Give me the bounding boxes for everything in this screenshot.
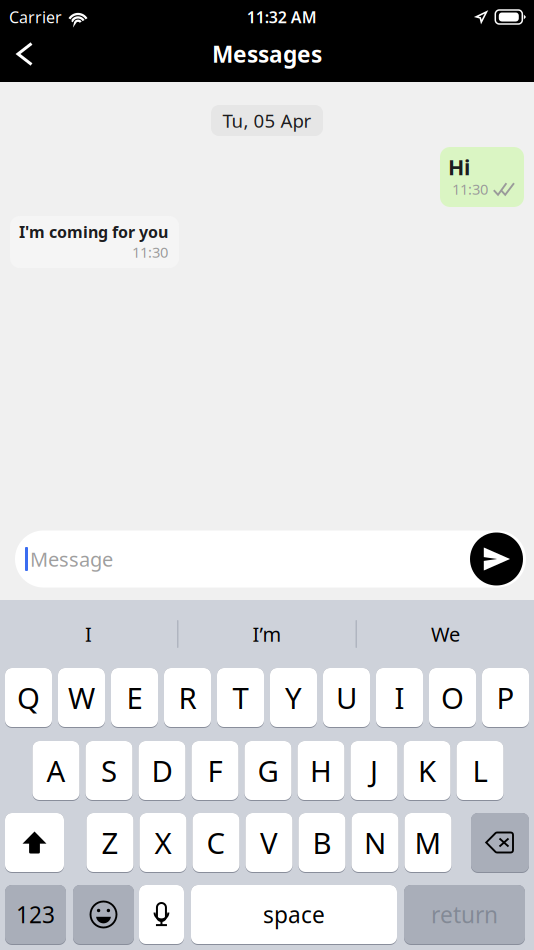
button[interactable]: Y: [270, 668, 317, 727]
staticText: Carrier: [9, 6, 62, 28]
button[interactable]: space: [191, 885, 397, 944]
staticText: I'm coming for you: [19, 221, 168, 242]
staticText: J: [370, 751, 378, 790]
staticText: S: [101, 751, 117, 790]
staticText: D: [151, 751, 172, 790]
button[interactable]: R: [164, 668, 211, 727]
staticText: G: [257, 751, 278, 790]
staticText: L: [472, 751, 487, 790]
button[interactable]: Shift: [5, 813, 64, 872]
button[interactable]: X: [139, 813, 186, 872]
staticText: I: [394, 678, 404, 717]
staticText: B: [312, 823, 331, 862]
staticText: Hi: [448, 153, 470, 181]
button[interactable]: I: [0, 600, 177, 668]
staticText: Message: [30, 546, 113, 572]
button[interactable]: Send: [470, 532, 523, 585]
staticText: Q: [17, 678, 40, 717]
button[interactable]: We: [357, 600, 534, 668]
button[interactable]: Dictate: [139, 885, 184, 944]
button[interactable]: M: [404, 813, 451, 872]
button[interactable]: G: [244, 741, 291, 800]
button[interactable]: E: [111, 668, 158, 727]
button[interactable]: Emoji: [73, 885, 134, 944]
staticText: 11:30: [132, 242, 168, 262]
staticText: N: [364, 823, 386, 862]
button[interactable]: U: [323, 668, 370, 727]
button[interactable]: return: [404, 885, 525, 944]
staticText: M: [414, 823, 441, 862]
button[interactable]: Back: [2, 30, 48, 78]
staticText: 11:32 AM: [247, 6, 317, 28]
button[interactable]: V: [245, 813, 292, 872]
staticText: U: [336, 678, 357, 717]
staticText: 11:30: [452, 179, 488, 199]
staticText: space: [263, 899, 325, 929]
button[interactable]: T: [217, 668, 264, 727]
staticText: Z: [101, 823, 118, 862]
staticText: return: [431, 899, 498, 929]
button[interactable]: I: [376, 668, 423, 727]
button[interactable]: I’m: [178, 600, 355, 668]
staticText: Y: [285, 678, 302, 717]
staticText: H: [310, 751, 332, 790]
staticText: E: [126, 678, 142, 717]
button[interactable]: Delete: [471, 813, 529, 872]
button[interactable]: N: [351, 813, 398, 872]
staticText: I: [85, 621, 92, 647]
button[interactable]: D: [138, 741, 185, 800]
button[interactable]: A: [32, 741, 79, 800]
staticText: R: [178, 678, 196, 717]
button[interactable]: W: [58, 668, 105, 727]
staticText: V: [260, 823, 278, 862]
staticText: X: [154, 823, 171, 862]
staticText: K: [418, 751, 436, 790]
button[interactable]: Q: [5, 668, 52, 727]
staticText: W: [68, 678, 95, 717]
button[interactable]: P: [482, 668, 529, 727]
staticText: P: [496, 678, 514, 717]
button[interactable]: S: [85, 741, 132, 800]
button[interactable]: K: [403, 741, 450, 800]
staticText: 123: [16, 899, 55, 929]
button[interactable]: L: [456, 741, 503, 800]
button[interactable]: O: [429, 668, 476, 727]
staticText: Messages: [212, 39, 322, 69]
staticText: I’m: [252, 621, 281, 647]
button[interactable]: B: [298, 813, 345, 872]
button[interactable]: F: [191, 741, 238, 800]
staticText: We: [431, 621, 460, 647]
staticText: O: [441, 678, 464, 717]
staticText: T: [232, 678, 248, 717]
staticText: F: [207, 751, 222, 790]
button[interactable]: C: [192, 813, 239, 872]
button[interactable]: J: [350, 741, 397, 800]
button[interactable]: Z: [86, 813, 133, 872]
button[interactable]: 123: [5, 885, 66, 944]
staticText: Tu, 05 Apr: [222, 108, 311, 133]
staticText: A: [46, 751, 65, 790]
staticText: C: [206, 823, 225, 862]
button[interactable]: H: [297, 741, 344, 800]
